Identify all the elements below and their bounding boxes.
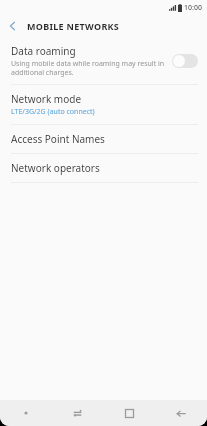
staticText: MOBILE NETWORKS [27,20,120,32]
staticText: Data roaming [11,44,76,58]
button[interactable]: Recents [103,400,155,426]
button[interactable]: Back [155,400,207,426]
staticText: Access Point Names [11,132,105,146]
button[interactable]: Data roaming [0,37,207,84]
button[interactable]: Network operators [0,154,207,182]
staticText: Network mode [11,92,82,106]
staticText: Network operators [11,161,100,175]
button[interactable]: Access Point Names [0,125,207,153]
button[interactable]: Network mode [0,85,207,124]
button[interactable]: Back [0,15,24,37]
button[interactable]: Switch input method [51,400,103,426]
button[interactable]: Notifications [0,400,51,426]
button[interactable]: Data roaming toggle [172,54,198,68]
staticText: 10:00 [184,3,202,13]
staticText: Using mobile data while roaming may resu… [11,59,165,77]
staticText: LTE/3G/2G (auto connect) [11,107,95,117]
